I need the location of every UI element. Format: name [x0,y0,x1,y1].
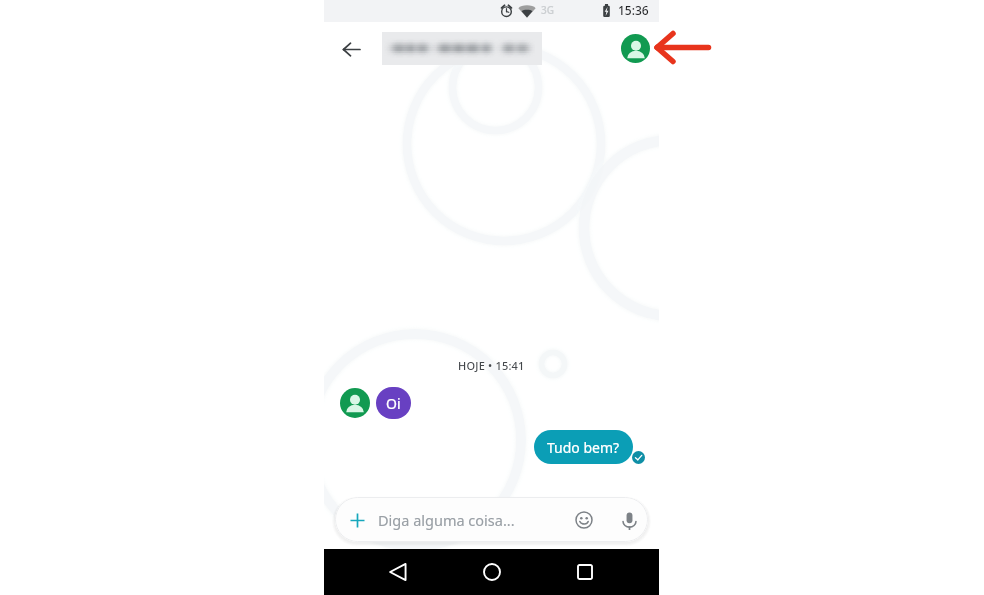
button[interactable]: Contact details [621,34,650,63]
staticText: 15:36 [618,2,649,18]
button[interactable]: Tudo bem? [534,430,633,464]
button[interactable]: Emoji [573,509,595,531]
button[interactable]: Oi [376,387,411,419]
staticText: 3G [541,3,554,17]
staticText: HOJE • 15:41 [458,358,525,373]
button[interactable]: Recents [565,552,605,592]
button[interactable]: Home [472,552,512,592]
staticText: Diga alguma coisa... [378,510,515,530]
button[interactable]: Back [335,33,367,65]
button[interactable]: Voice input [618,509,640,531]
button[interactable]: Attach [335,497,648,542]
button[interactable]: Back [378,552,418,592]
button[interactable]: Attach [346,509,368,531]
staticText: Tudo bem? [547,438,620,457]
staticText: Oi [386,394,401,413]
